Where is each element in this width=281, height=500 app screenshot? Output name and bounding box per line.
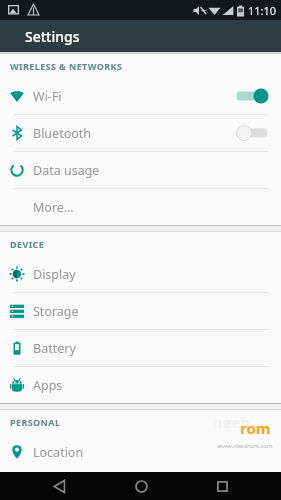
staticText: rom bbox=[240, 418, 271, 438]
button[interactable]: More… bbox=[0, 189, 281, 225]
button[interactable]: Battery bbox=[0, 330, 281, 366]
button[interactable]: Apps bbox=[0, 367, 281, 403]
staticText: Bluetooth bbox=[33, 125, 235, 142]
staticText: WIRELESS & NETWORKS bbox=[10, 60, 123, 72]
staticText: neeb bbox=[213, 412, 251, 432]
staticText: Battery bbox=[33, 340, 281, 357]
staticText: DEVICE bbox=[10, 238, 45, 250]
button[interactable]: Off bbox=[235, 122, 269, 144]
staticText: Settings bbox=[25, 27, 80, 46]
staticText: 11:10 bbox=[248, 3, 277, 18]
button[interactable]: Display bbox=[0, 256, 281, 292]
staticText: www.needrom.com bbox=[217, 442, 273, 450]
staticText: PERSONAL bbox=[10, 416, 61, 428]
button[interactable]: On bbox=[235, 85, 269, 107]
button[interactable]: Bluetooth bbox=[0, 115, 281, 151]
button[interactable]: Home bbox=[118, 472, 164, 500]
button[interactable]: Back bbox=[36, 472, 82, 500]
staticText: More… bbox=[33, 199, 281, 216]
staticText: Apps bbox=[33, 377, 281, 394]
staticText: Location bbox=[33, 444, 281, 461]
button[interactable]: Location bbox=[0, 434, 281, 470]
button[interactable]: Storage bbox=[0, 293, 281, 329]
staticText: Display bbox=[33, 266, 281, 283]
staticText: Storage bbox=[33, 303, 281, 320]
button[interactable]: Recent apps bbox=[199, 472, 245, 500]
button[interactable]: Wi-Fi bbox=[0, 78, 281, 114]
button[interactable]: Data usage bbox=[0, 152, 281, 188]
staticText: Wi-Fi bbox=[33, 88, 235, 105]
staticText: Data usage bbox=[33, 162, 281, 179]
